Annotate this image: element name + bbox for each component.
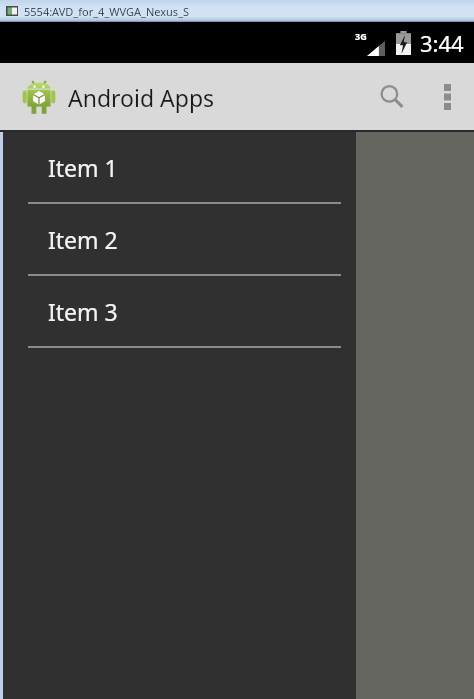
staticText: Item 3 <box>48 296 118 327</box>
button[interactable]: Android Apps, Home <box>0 77 223 117</box>
button[interactable]: Item 3 <box>3 276 356 348</box>
staticText: Android Apps <box>68 82 215 113</box>
staticText: Item 2 <box>48 224 118 255</box>
button[interactable]: Item 2 <box>3 204 356 276</box>
staticText: 3G <box>355 30 367 42</box>
button[interactable]: Search <box>364 63 420 130</box>
button[interactable]: Item 1 <box>3 132 356 204</box>
staticText: Item 1 <box>48 152 118 183</box>
staticText: 5554:AVD_for_4_WVGA_Nexus_S <box>24 4 190 19</box>
staticText: 3:44 <box>420 28 464 58</box>
button[interactable]: More options <box>420 63 474 130</box>
